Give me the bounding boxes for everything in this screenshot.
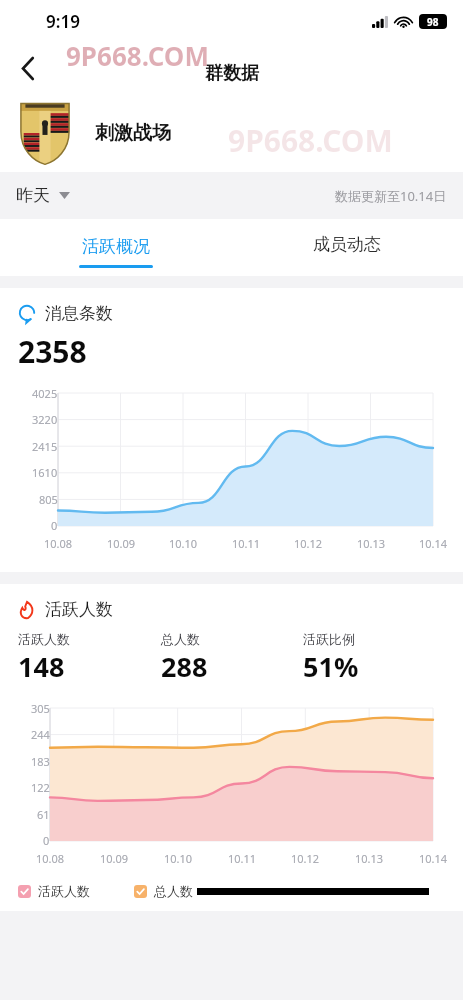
staticText: 9P668.COM — [228, 120, 393, 161]
staticText: 昨天 — [16, 185, 50, 206]
staticText: 4025 — [32, 386, 58, 401]
button[interactable]: 总人数 — [134, 883, 193, 899]
staticText: 10.11 — [227, 536, 265, 551]
staticText: 3220 — [32, 412, 58, 427]
staticText: 10.10 — [164, 536, 202, 551]
button[interactable]: 活跃人数 — [0, 584, 463, 911]
staticText: 消息条数 — [45, 303, 113, 324]
staticText: 总人数 — [154, 883, 193, 899]
staticText: 10.11 — [223, 851, 261, 866]
staticText: 刺激战场 — [95, 121, 171, 145]
staticText: 98 — [427, 15, 439, 29]
staticText: 183 — [31, 754, 50, 769]
staticText: 2415 — [32, 439, 58, 454]
staticText: 244 — [31, 727, 50, 742]
staticText: 305 — [31, 701, 50, 716]
staticText: 数据更新至10.14日 — [335, 187, 447, 205]
staticText: 288 — [161, 648, 208, 685]
button[interactable]: Back — [6, 46, 50, 90]
staticText: 9P668.COM — [66, 38, 209, 73]
staticText: 活跃概况 — [82, 236, 150, 257]
staticText: 10.13 — [352, 536, 390, 551]
staticText: 805 — [39, 492, 58, 507]
staticText: 10.13 — [350, 851, 388, 866]
button[interactable]: 成员动态 — [231, 219, 463, 276]
staticText: 10.12 — [289, 536, 327, 551]
staticText: 61 — [37, 807, 50, 822]
staticText: 0 — [51, 518, 58, 533]
staticText: 10.08 — [31, 851, 69, 866]
staticText: 10.12 — [286, 851, 324, 866]
staticText: 2358 — [18, 331, 87, 372]
button[interactable]: 活跃概况 — [0, 219, 231, 276]
staticText: 148 — [18, 648, 65, 685]
staticText: 10.14 — [414, 536, 452, 551]
staticText: 122 — [31, 780, 50, 795]
staticText: 10.08 — [39, 536, 77, 551]
staticText: 10.09 — [95, 851, 133, 866]
staticText: 9:19 — [46, 10, 80, 33]
staticText: 10.10 — [159, 851, 197, 866]
staticText: 活跃人数 — [45, 599, 113, 620]
staticText: 10.14 — [414, 851, 452, 866]
staticText: 10.09 — [102, 536, 140, 551]
button[interactable]: 刺激战场 — [0, 94, 463, 172]
button[interactable]: 活跃人数 — [18, 883, 90, 899]
staticText: 活跃人数 — [38, 883, 90, 899]
button[interactable]: 昨天 — [16, 185, 70, 206]
staticText: 1610 — [32, 465, 58, 480]
staticText: 成员动态 — [313, 234, 381, 255]
button[interactable]: 消息条数 — [0, 288, 463, 572]
staticText: 51% — [303, 648, 359, 685]
staticText: 总人数 — [161, 631, 200, 647]
staticText: 活跃人数 — [18, 631, 70, 647]
staticText: 活跃比例 — [303, 631, 355, 647]
staticText: 0 — [43, 833, 50, 848]
staticText: 群数据 — [205, 62, 259, 85]
